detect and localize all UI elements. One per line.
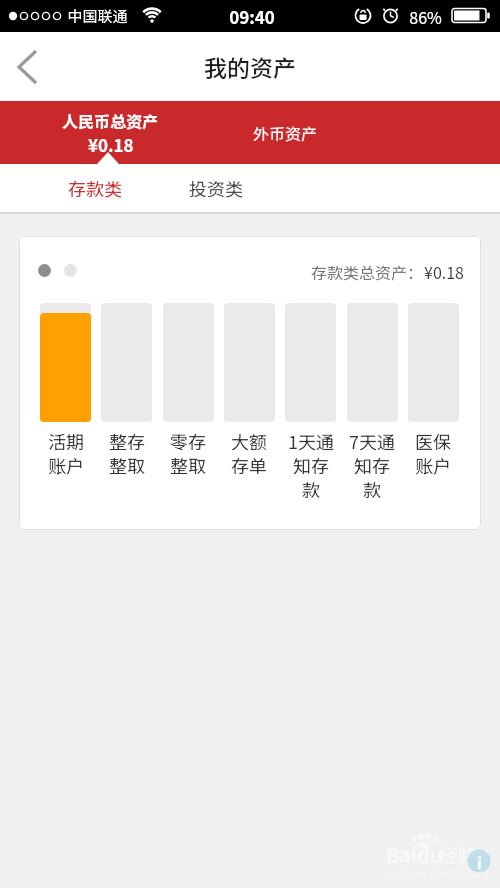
- staticText: i: [477, 850, 482, 873]
- staticText: 存款类: [68, 175, 122, 201]
- staticText: Baidu: [385, 840, 443, 864]
- staticText: jingyan.baidu.com: [385, 864, 489, 880]
- staticText: 活期 账户: [48, 428, 84, 478]
- staticText: ¥0.18: [88, 132, 134, 157]
- staticText: ¥0.18: [424, 260, 464, 282]
- button[interactable]: 投资类: [176, 164, 256, 212]
- staticText: 1天通 知存 款: [288, 428, 334, 502]
- staticText: 存款类总资产：: [311, 260, 424, 282]
- button[interactable]: [0, 32, 56, 101]
- staticText: 中国联通: [67, 5, 128, 27]
- staticText: 大额 存单: [231, 428, 267, 478]
- staticText: 整存 整取: [109, 428, 145, 478]
- staticText: 外币资产: [253, 121, 318, 144]
- button[interactable]: 存款类: [55, 164, 135, 212]
- staticText: 投资类: [189, 175, 243, 201]
- staticText: 零存 整取: [170, 428, 206, 478]
- staticText: 我的资产: [204, 50, 296, 83]
- staticText: 医保 账户: [415, 428, 451, 478]
- staticText: 经验: [438, 841, 477, 865]
- staticText: 86%: [409, 5, 442, 28]
- staticText: 09:40: [229, 4, 275, 29]
- staticText: 人民币总资产: [62, 109, 159, 132]
- staticText: 7天通 知存 款: [349, 428, 395, 502]
- button[interactable]: [40, 303, 91, 422]
- button[interactable]: 人民币总资产: [30, 101, 190, 164]
- button[interactable]: 外币资产: [215, 101, 355, 164]
